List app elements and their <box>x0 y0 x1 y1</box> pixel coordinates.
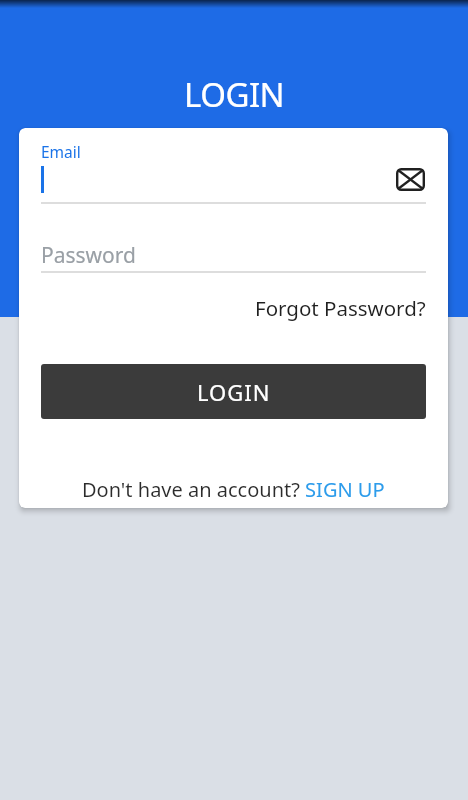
button[interactable] <box>41 162 426 203</box>
button[interactable]: Forgot Password? <box>255 294 426 322</box>
button[interactable]: LOGIN <box>41 364 426 419</box>
button[interactable] <box>41 236 426 273</box>
staticText: Password <box>41 241 136 270</box>
staticText: LOGIN <box>184 72 285 117</box>
staticText: LOGIN <box>197 377 271 407</box>
staticText: Email <box>41 141 81 162</box>
button[interactable]: Don't have an account? SIGN UP <box>82 476 385 503</box>
